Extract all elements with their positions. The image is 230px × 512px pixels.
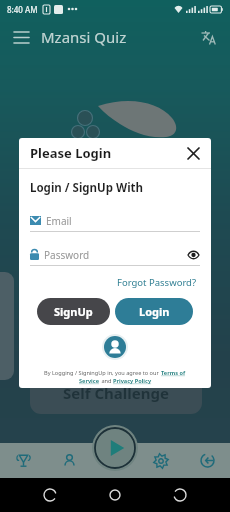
- button[interactable]: Profile: [46, 443, 92, 478]
- staticText: Service: [79, 377, 100, 385]
- staticText: Terms of: [161, 369, 186, 377]
- button[interactable]: Close: [183, 143, 203, 163]
- staticText: Mzansi Quiz: [41, 27, 127, 47]
- staticText: Please Login: [30, 144, 112, 162]
- staticText: Password: [44, 248, 90, 262]
- button[interactable]: Back: [35, 480, 65, 510]
- staticText: Forgot Password?: [117, 276, 197, 289]
- button[interactable]: Settings: [138, 443, 184, 478]
- button[interactable]: Toggle password visibility: [186, 248, 200, 262]
- staticText: By Logging / SigningUp in, you agree to …: [44, 369, 161, 377]
- button[interactable]: Leaderboard: [0, 443, 46, 478]
- button[interactable]: Privacy Policy: [113, 377, 152, 385]
- button[interactable]: Login: [115, 298, 193, 325]
- button[interactable]: Terms of: [161, 369, 186, 377]
- button[interactable]: Open navigation menu: [10, 26, 32, 48]
- staticText: Login / SignUp With: [30, 180, 144, 196]
- staticText: 8:40 AM: [7, 4, 38, 15]
- staticText: SignUp: [54, 304, 93, 319]
- button[interactable]: Home: [100, 480, 130, 510]
- staticText: Self Challenge: [63, 383, 169, 403]
- button[interactable]: SignUp: [37, 298, 110, 325]
- button[interactable]: Service: [79, 377, 100, 385]
- button[interactable]: Sign in: [184, 443, 230, 478]
- button[interactable]: Translate: [196, 25, 220, 49]
- button[interactable]: Sign in with account: [102, 334, 128, 360]
- staticText: Privacy Policy: [113, 377, 152, 385]
- button[interactable]: Forgot Password?: [115, 274, 199, 291]
- button[interactable]: Play: [92, 425, 138, 471]
- staticText: and: [100, 377, 113, 385]
- staticText: Email: [46, 214, 72, 228]
- button[interactable]: Recents: [165, 480, 195, 510]
- staticText: Login: [139, 304, 170, 319]
